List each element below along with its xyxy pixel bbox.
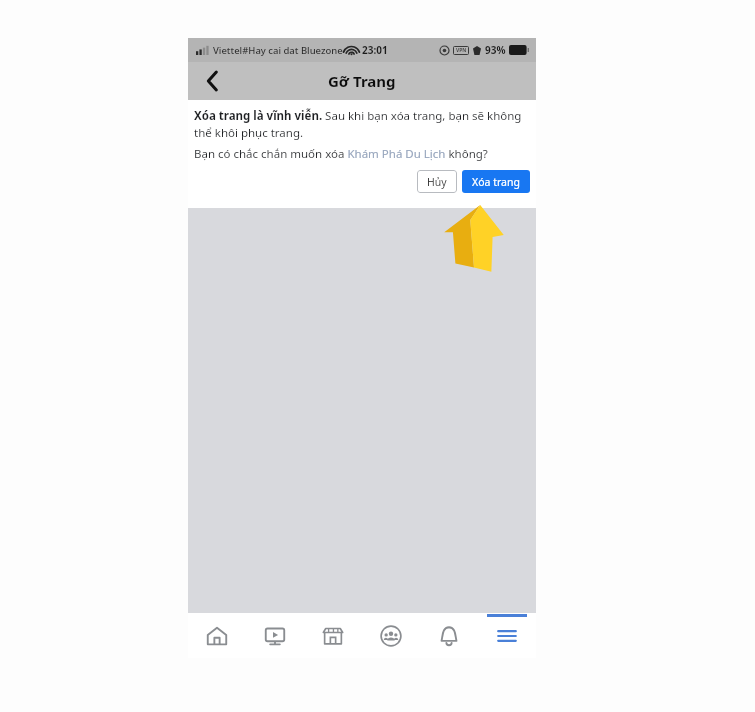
staticText: Viettel#Hay cai dat Bluezone bbox=[213, 44, 343, 57]
staticText: Gỡ Trang bbox=[328, 71, 396, 91]
button[interactable]: Marketplace bbox=[304, 613, 362, 658]
button[interactable]: Menu bbox=[478, 613, 536, 658]
staticText: VPN bbox=[456, 47, 467, 54]
button[interactable]: Xóa trang bbox=[462, 170, 530, 193]
staticText: 23:01 bbox=[362, 43, 388, 57]
staticText: Xóa trang bbox=[472, 175, 520, 189]
button[interactable]: Notifications bbox=[420, 613, 478, 658]
staticText: Xóa trang là vĩnh viễn. Sau khi bạn xóa … bbox=[194, 108, 530, 140]
button[interactable]: Watch bbox=[246, 613, 304, 658]
staticText: Hủy bbox=[427, 175, 447, 189]
staticText: 93% bbox=[485, 43, 506, 57]
button[interactable]: Groups bbox=[362, 613, 420, 658]
button[interactable]: Home bbox=[188, 613, 246, 658]
staticText: Bạn có chắc chắn muốn xóa Khám Phá Du Lị… bbox=[194, 146, 488, 162]
button[interactable]: Back bbox=[192, 62, 232, 100]
button[interactable]: Hủy bbox=[417, 170, 457, 193]
